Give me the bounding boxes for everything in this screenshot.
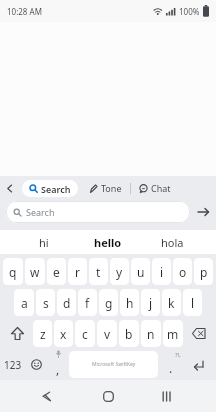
staticText: j [149, 295, 153, 311]
button[interactable] [6, 184, 13, 193]
button[interactable]: a [14, 289, 34, 316]
staticText: i [160, 264, 164, 280]
staticText: y [116, 264, 123, 280]
button[interactable]: l [183, 289, 202, 316]
staticText: hi [39, 235, 49, 250]
button[interactable]: j [141, 289, 160, 316]
staticText: o [179, 264, 187, 280]
staticText: u [137, 264, 145, 280]
button[interactable]: n [141, 320, 161, 347]
staticText: z [40, 326, 46, 342]
button[interactable]: i [152, 258, 171, 285]
staticText: Chat [151, 182, 171, 194]
staticText: e [53, 264, 60, 280]
button[interactable]: Chat [137, 178, 173, 198]
button[interactable] [190, 201, 216, 223]
staticText: n [147, 326, 155, 342]
button[interactable]: s [36, 289, 55, 316]
button[interactable]: z [33, 320, 52, 347]
button[interactable]: c [75, 320, 95, 347]
staticText: hello [94, 235, 122, 250]
button[interactable]: b [119, 320, 139, 347]
button[interactable]: 123 [2, 349, 24, 380]
staticText: q [9, 264, 17, 280]
button[interactable] [183, 349, 214, 380]
staticText: a [21, 295, 28, 311]
button[interactable]: x [54, 320, 73, 347]
button[interactable]: Microsoft SwiftKey [69, 351, 158, 378]
staticText: x [60, 326, 67, 342]
button[interactable] [184, 318, 214, 349]
staticText: w [30, 264, 40, 280]
staticText: l [191, 295, 195, 311]
staticText: p [200, 264, 208, 280]
button[interactable]: k [162, 289, 181, 316]
button[interactable] [32, 380, 60, 412]
staticText: Search [41, 183, 71, 195]
button[interactable] [153, 380, 181, 412]
button[interactable]: u [131, 258, 150, 285]
button[interactable]: h [120, 289, 139, 316]
button[interactable]: w [25, 258, 45, 285]
button[interactable]: m [163, 320, 183, 347]
button[interactable]: q [3, 258, 23, 285]
button[interactable]: g [99, 289, 118, 316]
button[interactable] [24, 349, 48, 380]
staticText: s [43, 295, 49, 311]
button[interactable]: t [89, 258, 108, 285]
button[interactable]: p [194, 258, 213, 285]
button[interactable]: hello [76, 230, 140, 254]
button[interactable]: v [97, 320, 117, 347]
staticText: Tone [101, 182, 122, 194]
staticText: v [104, 326, 111, 342]
staticText: c [82, 326, 88, 342]
staticText: t [96, 264, 101, 280]
staticText: Search [26, 206, 55, 218]
button[interactable]: f [78, 289, 97, 316]
staticText: r [75, 264, 80, 280]
button[interactable]: d [57, 289, 76, 316]
staticText: . [169, 360, 173, 376]
staticText: 100% [179, 6, 200, 17]
staticText: ?!, [175, 351, 181, 359]
button[interactable]: Search [6, 201, 190, 223]
staticText: h [126, 295, 134, 311]
button[interactable]: ?!, [159, 349, 183, 380]
staticText: 10:28 AM [7, 6, 42, 17]
staticText: , [56, 361, 60, 377]
button[interactable]: y [110, 258, 129, 285]
button[interactable] [2, 318, 32, 349]
staticText: f [85, 295, 90, 311]
button[interactable] [94, 380, 122, 412]
staticText: hola [161, 235, 184, 250]
staticText: 123 [4, 358, 22, 372]
button[interactable]: , [48, 349, 68, 380]
staticText: k [168, 295, 175, 311]
button[interactable]: hola [140, 230, 204, 254]
button[interactable]: hi [12, 230, 76, 254]
staticText: d [63, 295, 71, 311]
button[interactable]: Tone [87, 178, 124, 198]
button[interactable]: o [173, 258, 192, 285]
button[interactable]: e [47, 258, 66, 285]
staticText: Microsoft SwiftKey [92, 361, 136, 368]
button[interactable]: r [68, 258, 87, 285]
staticText: g [105, 295, 113, 311]
staticText: b [125, 326, 133, 342]
button[interactable]: Search [22, 180, 78, 197]
staticText: m [167, 326, 179, 342]
